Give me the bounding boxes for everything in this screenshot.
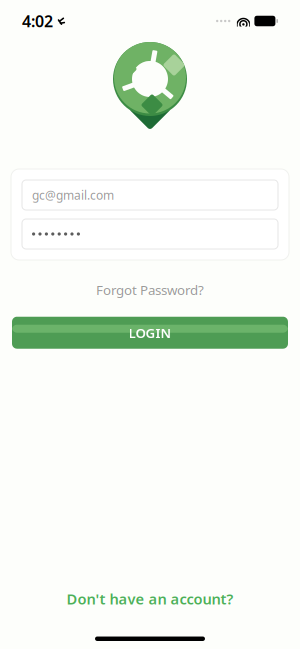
button[interactable]: Don't have an account?	[52, 583, 247, 614]
staticText: Forgot Password?	[96, 281, 204, 299]
staticText: gc@gmail.com	[32, 187, 114, 203]
staticText: 4:02	[22, 10, 53, 32]
staticText: Don't have an account?	[66, 589, 233, 608]
staticText: LOGIN	[128, 324, 171, 342]
button[interactable]: LOGIN	[12, 317, 288, 349]
button[interactable]: Forgot Password?	[86, 276, 214, 304]
